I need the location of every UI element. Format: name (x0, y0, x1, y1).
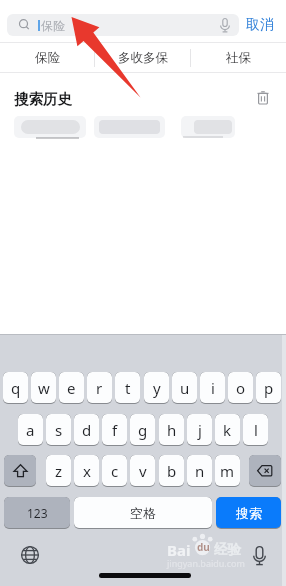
staticText: u (180, 378, 190, 398)
staticText: i (211, 378, 215, 398)
button[interactable] (249, 455, 281, 487)
button[interactable]: f (102, 414, 127, 446)
button[interactable] (14, 116, 86, 138)
staticText: h (167, 420, 177, 440)
staticText: q (11, 378, 21, 398)
staticText: 空格 (130, 505, 156, 521)
button[interactable]: k (215, 414, 240, 446)
button[interactable]: c (102, 455, 127, 487)
button[interactable]: e (59, 372, 84, 404)
button[interactable]: 社保 (191, 43, 286, 73)
staticText: t (125, 378, 131, 398)
button[interactable]: b (159, 455, 184, 487)
button[interactable]: j (187, 414, 212, 446)
button[interactable]: 搜索 (216, 497, 281, 529)
button[interactable]: 保险 (7, 14, 239, 36)
button[interactable]: 多收多保 (95, 43, 190, 73)
staticText: 取消 (246, 16, 274, 34)
staticText: n (195, 461, 205, 481)
staticText: l (254, 420, 258, 440)
staticText: du (197, 540, 210, 554)
staticText: Bai (167, 540, 191, 560)
staticText: v (139, 461, 147, 481)
button[interactable]: 123 (4, 497, 70, 529)
staticText: 123 (27, 505, 48, 521)
button[interactable]: s (46, 414, 71, 446)
button[interactable]: l (243, 414, 268, 446)
staticText: e (67, 378, 76, 398)
staticText: j (198, 420, 202, 440)
staticText: 保险 (41, 18, 65, 33)
button[interactable]: y (144, 372, 169, 404)
button[interactable]: 取消 (241, 14, 278, 36)
staticText: x (83, 461, 91, 481)
button[interactable] (181, 116, 235, 138)
button[interactable]: x (74, 455, 99, 487)
button[interactable]: w (31, 372, 56, 404)
button[interactable] (16, 541, 44, 569)
staticText: 多收多保 (118, 50, 168, 66)
staticText: r (96, 378, 103, 398)
button[interactable]: a (18, 414, 43, 446)
button[interactable]: 空格 (74, 497, 212, 529)
button[interactable] (251, 86, 275, 110)
button[interactable]: r (87, 372, 112, 404)
staticText: b (167, 461, 177, 481)
staticText: g (138, 420, 148, 440)
button[interactable]: h (159, 414, 184, 446)
button[interactable]: u (172, 372, 197, 404)
button[interactable]: n (187, 455, 212, 487)
staticText: k (223, 420, 232, 440)
staticText: s (55, 420, 63, 440)
staticText: jingyan.baidu.com (167, 557, 245, 569)
button[interactable]: t (115, 372, 140, 404)
staticText: 保险 (35, 50, 60, 66)
button[interactable]: q (3, 372, 28, 404)
button[interactable] (94, 116, 165, 138)
button[interactable]: 保险 (0, 43, 94, 73)
button[interactable]: d (74, 414, 99, 446)
staticText: f (112, 420, 118, 440)
staticText: a (26, 420, 35, 440)
staticText: c (111, 461, 119, 481)
staticText: w (38, 378, 50, 398)
button[interactable]: m (215, 455, 240, 487)
staticText: p (264, 378, 274, 398)
staticText: y (153, 378, 161, 398)
staticText: 经验 (214, 541, 241, 558)
button[interactable]: v (130, 455, 155, 487)
staticText: d (82, 420, 92, 440)
button[interactable]: o (228, 372, 253, 404)
button[interactable]: i (200, 372, 225, 404)
button[interactable] (246, 540, 272, 570)
staticText: 社保 (226, 50, 251, 66)
staticText: 搜索历史 (14, 90, 72, 108)
button[interactable]: g (130, 414, 155, 446)
button[interactable] (4, 455, 36, 487)
staticText: m (220, 461, 235, 481)
button[interactable]: z (46, 455, 71, 487)
staticText: 搜索 (236, 505, 262, 521)
staticText: z (55, 461, 63, 481)
button[interactable]: p (256, 372, 281, 404)
staticText: o (236, 378, 246, 398)
